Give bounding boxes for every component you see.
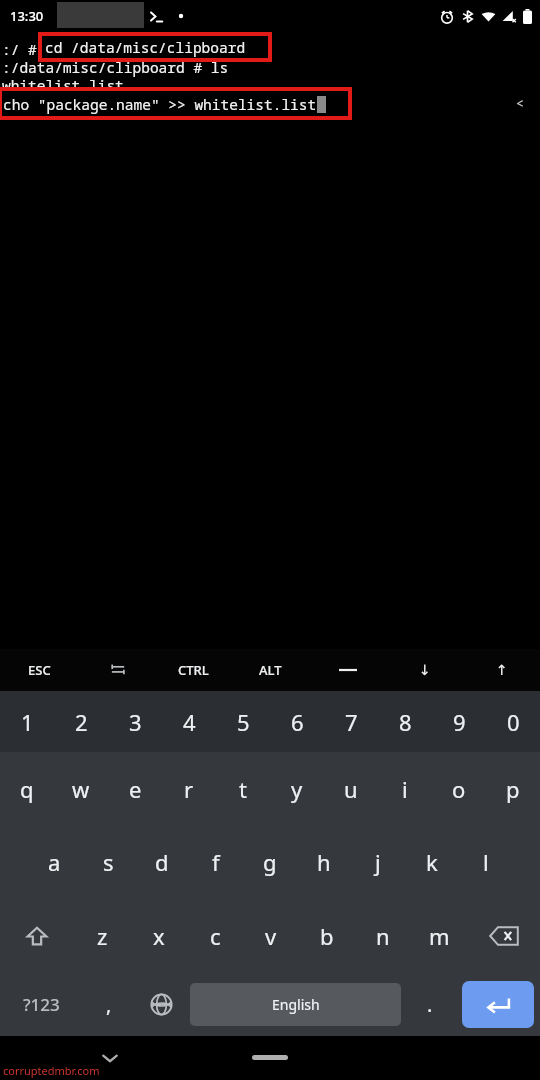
staticText: n: [376, 921, 390, 951]
staticText: 13:30: [10, 7, 44, 25]
staticText: b: [320, 921, 334, 951]
staticText: e: [129, 774, 142, 804]
button[interactable]: 0: [486, 691, 540, 752]
staticText: d: [155, 847, 169, 877]
staticText: whitelist.list: [2, 75, 124, 95]
button[interactable]: Backspace: [467, 899, 540, 973]
staticText: cd /data/misc/clipboard: [45, 37, 246, 57]
staticText: ALT: [259, 661, 282, 679]
staticText: <: [516, 94, 524, 112]
button[interactable]: i: [378, 752, 432, 825]
button[interactable]: r: [162, 752, 216, 825]
staticText: m: [429, 921, 450, 951]
staticText: ESC: [28, 661, 51, 679]
button[interactable]: u: [324, 752, 378, 825]
button[interactable]: ?123: [0, 973, 83, 1036]
button[interactable]: 5: [216, 691, 270, 752]
button[interactable]: o: [432, 752, 486, 825]
button[interactable]: English: [190, 983, 401, 1026]
staticText: p: [506, 774, 520, 804]
staticText: v: [265, 921, 277, 951]
staticText: 1: [21, 707, 34, 737]
staticText: j: [375, 847, 381, 877]
staticText: t: [239, 774, 247, 804]
button[interactable]: ESC: [0, 649, 78, 691]
button[interactable]: CTRL: [155, 649, 232, 691]
staticText: 3: [129, 707, 142, 737]
staticText: cho "package.name" >> whitelist.list: [3, 94, 317, 114]
staticText: o: [452, 774, 466, 804]
staticText: c: [210, 921, 221, 951]
button[interactable]: t: [216, 752, 270, 825]
staticText: k: [426, 847, 438, 877]
staticText: :/ #: [2, 39, 37, 59]
staticText: 7: [345, 707, 358, 737]
button[interactable]: j: [351, 825, 405, 899]
button[interactable]: Shift: [0, 899, 74, 973]
button[interactable]: v: [243, 899, 299, 973]
button[interactable]: y: [270, 752, 324, 825]
staticText: r: [184, 774, 194, 804]
button[interactable]: Hide keyboard: [90, 1038, 130, 1078]
button[interactable]: .: [404, 973, 456, 1036]
staticText: ↓: [419, 662, 431, 678]
staticText: corruptedmbr.com: [3, 1063, 100, 1078]
staticText: ↑: [496, 662, 508, 678]
button[interactable]: 7: [324, 691, 378, 752]
button[interactable]: k: [405, 825, 459, 899]
staticText: ,: [106, 991, 112, 1018]
button[interactable]: m: [411, 899, 467, 973]
staticText: 2: [75, 707, 88, 737]
button[interactable]: ↑: [463, 649, 540, 691]
staticText: 4: [183, 707, 196, 737]
button[interactable]: 9: [432, 691, 486, 752]
button[interactable]: e: [108, 752, 162, 825]
staticText: x: [153, 921, 165, 951]
staticText: q: [20, 774, 34, 804]
button[interactable]: ALT: [232, 649, 309, 691]
staticText: i: [402, 774, 408, 804]
staticText: 6: [291, 707, 304, 737]
button[interactable]: Tab: [78, 649, 155, 691]
button[interactable]: n: [355, 899, 411, 973]
button[interactable]: d: [135, 825, 189, 899]
staticText: 5: [237, 707, 250, 737]
button[interactable]: a: [27, 825, 81, 899]
button[interactable]: q: [0, 752, 54, 825]
button[interactable]: s: [81, 825, 135, 899]
button[interactable]: b: [299, 899, 355, 973]
staticText: .: [427, 991, 433, 1018]
staticText: l: [483, 847, 489, 877]
button[interactable]: 1: [0, 691, 54, 752]
button[interactable]: 8: [378, 691, 432, 752]
staticText: ?123: [23, 993, 60, 1016]
button[interactable]: 2: [54, 691, 108, 752]
button[interactable]: 3: [108, 691, 162, 752]
button[interactable]: l: [459, 825, 513, 899]
button[interactable]: h: [297, 825, 351, 899]
staticText: u: [344, 774, 358, 804]
button[interactable]: 4: [162, 691, 216, 752]
button[interactable]: Change language: [135, 973, 187, 1036]
button[interactable]: ↓: [386, 649, 463, 691]
staticText: s: [103, 847, 114, 877]
button[interactable]: f: [189, 825, 243, 899]
button[interactable]: ,: [83, 973, 135, 1036]
staticText: g: [263, 847, 277, 877]
staticText: CTRL: [178, 661, 209, 679]
button[interactable]: z: [74, 899, 131, 973]
button[interactable]: Enter: [462, 981, 534, 1028]
staticText: 0: [507, 707, 520, 737]
button[interactable]: p: [486, 752, 540, 825]
staticText: z: [97, 921, 108, 951]
staticText: a: [48, 847, 61, 877]
staticText: f: [212, 847, 220, 877]
button[interactable]: g: [243, 825, 297, 899]
button[interactable]: w: [54, 752, 108, 825]
button[interactable]: Home: [252, 1055, 288, 1060]
button[interactable]: Minus: [309, 649, 386, 691]
button[interactable]: 6: [270, 691, 324, 752]
staticText: 8: [399, 707, 412, 737]
button[interactable]: x: [131, 899, 187, 973]
button[interactable]: c: [187, 899, 243, 973]
